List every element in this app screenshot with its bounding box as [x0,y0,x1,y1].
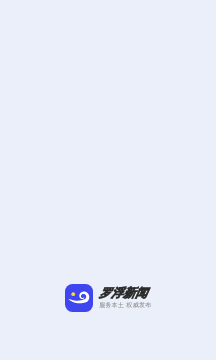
staticText: 罗浮新闻 [99,285,147,300]
other: 罗浮新闻 [65,284,93,312]
button[interactable]: 罗浮新闻 [65,284,152,312]
staticText: 服务本土 权威发布 [99,301,152,309]
staticText: 罗浮新闻 [99,285,147,300]
